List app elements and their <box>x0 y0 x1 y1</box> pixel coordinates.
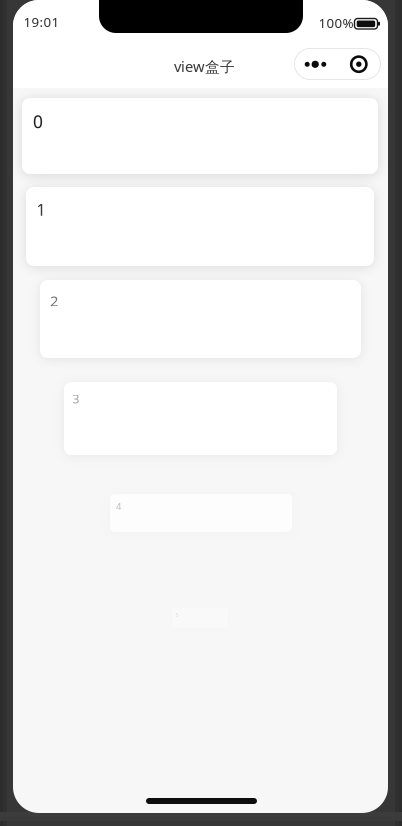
staticText: 4 <box>116 500 121 512</box>
staticText: 1 <box>36 199 45 220</box>
staticText: 3 <box>72 391 79 407</box>
button[interactable]: Close mini program <box>337 48 380 79</box>
staticText: 19:01 <box>23 13 59 31</box>
staticText: 5 <box>175 611 178 619</box>
staticText: 2 <box>50 291 58 310</box>
staticText: 100% <box>318 14 353 32</box>
staticText: view盒子 <box>174 56 235 76</box>
button[interactable]: More <box>294 48 337 79</box>
staticText: 0 <box>33 110 43 133</box>
